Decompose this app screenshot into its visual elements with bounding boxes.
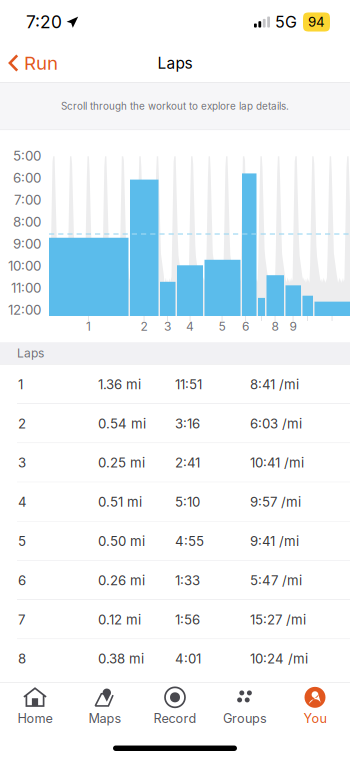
staticText: You	[303, 711, 326, 726]
staticText: 5:47 /mi	[250, 572, 302, 588]
staticText: 7:20	[26, 11, 62, 32]
staticText: 4:55	[175, 533, 204, 549]
staticText: 0.12 mi	[98, 612, 141, 628]
staticText: 2:41	[175, 455, 200, 471]
staticText: 7:00	[14, 192, 41, 208]
staticText: 10:41 /mi	[250, 455, 304, 471]
staticText: 10:24 /mi	[250, 651, 308, 667]
staticText: 7	[18, 612, 25, 628]
staticText: 5:10	[175, 494, 200, 510]
staticText: 6	[18, 572, 26, 588]
staticText: 3	[164, 319, 171, 334]
staticText: 6	[242, 319, 249, 334]
staticText: 0.38 mi	[98, 651, 144, 667]
staticText: Home	[17, 711, 52, 726]
staticText: 12:00	[8, 302, 41, 318]
button[interactable]: Run	[0, 44, 68, 82]
staticText: 8:41 /mi	[250, 376, 299, 392]
staticText: Maps	[88, 711, 121, 726]
button[interactable]: 1	[0, 365, 350, 404]
staticText: 2	[140, 319, 147, 334]
staticText: 94	[308, 14, 325, 30]
staticText: 8	[18, 651, 26, 667]
staticText: 6:03 /mi	[250, 416, 302, 432]
staticText: 9:41 /mi	[250, 533, 299, 549]
staticText: 2	[18, 416, 26, 432]
staticText: 3:16	[175, 416, 200, 432]
staticText: 10:00	[8, 258, 41, 274]
staticText: 1.36 mi	[98, 376, 141, 392]
staticText: 4:01	[175, 651, 201, 667]
button[interactable]: 6	[0, 561, 350, 600]
staticText: 5	[218, 319, 225, 334]
button[interactable]: Record	[140, 683, 210, 729]
staticText: 0.54 mi	[98, 416, 146, 432]
staticText: 8	[271, 319, 278, 334]
staticText: 1:56	[175, 612, 200, 628]
staticText: 1:33	[175, 572, 200, 588]
staticText: 0.25 mi	[98, 455, 145, 471]
staticText: 6:00	[13, 170, 41, 186]
staticText: 5:00	[13, 148, 41, 164]
staticText: 9	[289, 319, 296, 334]
staticText: 11:51	[175, 376, 202, 392]
staticText: Laps	[157, 54, 192, 72]
staticText: Scroll through the workout to explore la…	[61, 100, 289, 112]
staticText: Laps	[17, 346, 44, 360]
staticText: 5G	[275, 12, 297, 32]
staticText: 1	[86, 319, 91, 334]
staticText: Groups	[223, 711, 267, 726]
staticText: 4	[186, 319, 194, 334]
staticText: 0.51 mi	[98, 494, 142, 510]
button[interactable]: 5	[0, 522, 350, 561]
staticText: 4	[18, 494, 27, 510]
staticText: 9:00	[13, 236, 41, 252]
staticText: 11:00	[11, 280, 41, 296]
button[interactable]: 4	[0, 482, 350, 522]
staticText: 0.50 mi	[98, 533, 145, 549]
button[interactable]: 2	[0, 404, 350, 443]
staticText: 3	[18, 455, 26, 471]
button[interactable]: Home	[0, 683, 70, 729]
staticText: Record	[153, 711, 196, 726]
staticText: 0.26 mi	[98, 572, 145, 588]
staticText: 15:27 /mi	[250, 612, 306, 628]
button[interactable]: Groups	[210, 683, 280, 729]
button[interactable]: Maps	[70, 683, 140, 729]
button[interactable]: 3	[0, 443, 350, 482]
staticText: 5	[18, 533, 26, 549]
staticText: Run	[24, 52, 58, 74]
button[interactable]: 7	[0, 600, 350, 639]
staticText: 8:00	[13, 214, 41, 230]
button[interactable]: 8	[0, 639, 350, 678]
button[interactable]: You	[280, 683, 350, 729]
staticText: 1	[18, 376, 23, 392]
staticText: 9:57 /mi	[250, 494, 301, 510]
